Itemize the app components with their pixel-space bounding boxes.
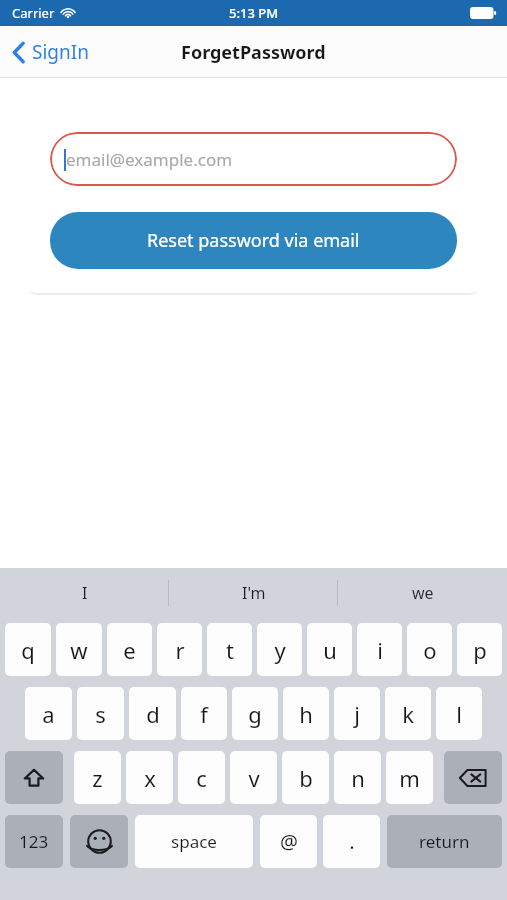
staticText: g (248, 699, 262, 729)
button[interactable]: j (334, 687, 380, 740)
button[interactable]: u (307, 623, 352, 676)
button[interactable]: g (232, 687, 278, 740)
staticText: p (473, 635, 487, 665)
button[interactable]: SignIn (8, 33, 93, 71)
staticText: w (70, 635, 88, 665)
staticText: n (351, 763, 365, 793)
staticText: c (196, 763, 207, 793)
staticText: I (82, 582, 88, 604)
staticText: e (123, 635, 136, 665)
staticText: o (423, 635, 437, 665)
staticText: f (200, 699, 208, 729)
button[interactable]: l (436, 687, 482, 740)
button[interactable]: v (230, 751, 277, 804)
button[interactable]: return (387, 815, 502, 868)
button[interactable]: w (56, 623, 102, 676)
button[interactable]: d (129, 687, 176, 740)
staticText: 123 (19, 830, 49, 853)
staticText: v (248, 763, 260, 793)
button[interactable]: t (207, 623, 252, 676)
staticText: 5:13 PM (229, 4, 279, 22)
button[interactable]: email@example.com (50, 132, 457, 186)
staticText: @ (280, 828, 298, 855)
button[interactable]: m (386, 751, 433, 804)
staticText: m (399, 763, 420, 793)
button[interactable]: Shift (5, 751, 63, 804)
button[interactable]: a (25, 687, 72, 740)
staticText: y (274, 635, 286, 665)
staticText: s (95, 699, 106, 729)
staticText: q (21, 635, 35, 665)
button[interactable]: r (157, 623, 202, 676)
staticText: h (299, 699, 313, 729)
button[interactable]: y (257, 623, 302, 676)
staticText: r (175, 635, 185, 665)
button[interactable]: b (282, 751, 329, 804)
button[interactable]: k (385, 687, 431, 740)
staticText: . (349, 828, 355, 855)
button[interactable]: o (407, 623, 452, 676)
staticText: Reset password via email (147, 228, 360, 253)
button[interactable]: . (323, 815, 380, 868)
staticText: t (226, 635, 234, 665)
staticText: space (171, 830, 217, 853)
staticText: k (402, 699, 414, 729)
button[interactable]: 123 (5, 815, 63, 868)
button[interactable]: p (457, 623, 502, 676)
button[interactable]: s (77, 687, 124, 740)
staticText: I'm (242, 582, 266, 604)
button[interactable]: n (334, 751, 381, 804)
staticText: i (377, 635, 383, 665)
button[interactable]: we (338, 568, 507, 618)
staticText: SignIn (32, 39, 89, 65)
staticText: j (354, 699, 360, 729)
staticText: x (144, 763, 156, 793)
button[interactable]: I (0, 568, 169, 618)
staticText: Carrier (12, 4, 55, 22)
staticText: d (146, 699, 160, 729)
staticText: z (92, 763, 103, 793)
staticText: l (456, 699, 462, 729)
staticText: return (419, 830, 470, 853)
staticText: u (323, 635, 337, 665)
button[interactable]: i (357, 623, 402, 676)
button[interactable]: @ (260, 815, 317, 868)
button[interactable]: q (5, 623, 51, 676)
staticText: b (299, 763, 313, 793)
button[interactable]: e (107, 623, 152, 676)
staticText: we (412, 582, 434, 604)
button[interactable]: space (135, 815, 253, 868)
button[interactable]: Backspace (444, 751, 502, 804)
button[interactable]: Emoji (70, 815, 128, 868)
staticText: a (42, 699, 55, 729)
button[interactable]: x (126, 751, 173, 804)
button[interactable]: f (181, 687, 227, 740)
button[interactable]: I'm (169, 568, 338, 618)
button[interactable]: c (178, 751, 225, 804)
staticText: email@example.com (66, 148, 233, 171)
staticText: ForgetPassword (181, 40, 326, 65)
button[interactable]: z (74, 751, 121, 804)
button[interactable]: h (283, 687, 329, 740)
button[interactable]: Reset password via email (50, 212, 457, 269)
